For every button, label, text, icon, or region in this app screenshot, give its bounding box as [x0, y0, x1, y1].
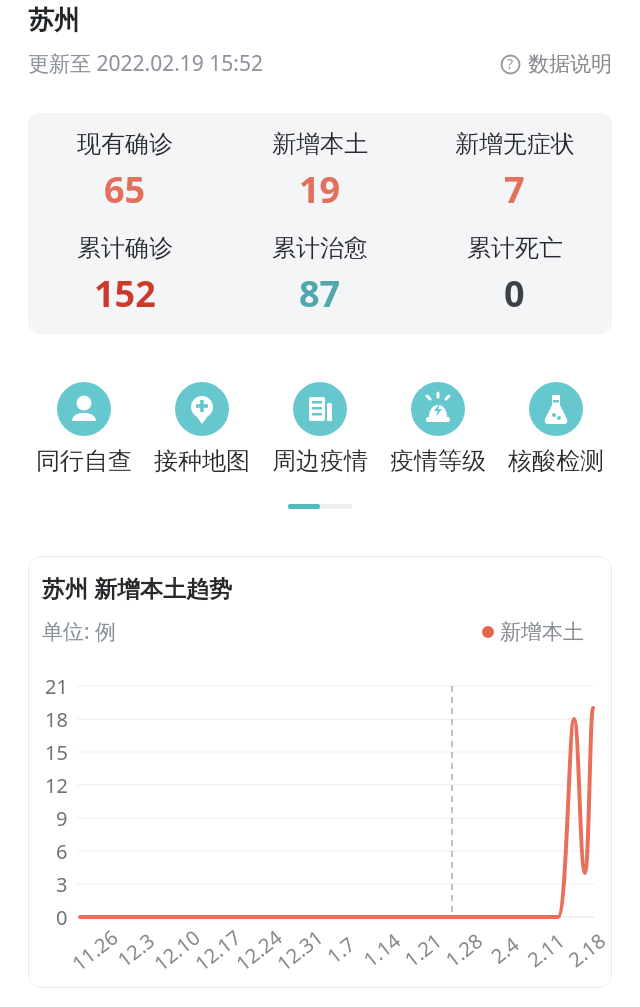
button[interactable]: 累计死亡: [417, 233, 612, 318]
staticText: 新增本土: [272, 129, 368, 159]
staticText: 87: [299, 269, 341, 318]
staticText: 0: [504, 269, 525, 318]
staticText: 现有确诊: [77, 129, 173, 159]
button[interactable]: 现有确诊: [28, 129, 222, 214]
staticText: 152: [94, 269, 156, 318]
staticText: 苏州: [28, 4, 80, 37]
staticText: ?: [507, 54, 514, 73]
button[interactable]: 核酸检测: [497, 382, 615, 476]
staticText: 新增本土: [500, 619, 584, 645]
staticText: 累计治愈: [272, 233, 368, 263]
staticText: 累计死亡: [467, 233, 563, 263]
staticText: 数据说明: [528, 51, 612, 77]
staticText: 更新至 2022.02.19 15:52: [28, 49, 263, 78]
staticText: 苏州 新增本土趋势: [42, 572, 232, 603]
staticText: 65: [104, 165, 146, 214]
staticText: 同行自查: [36, 446, 132, 476]
button[interactable]: ?: [500, 51, 612, 77]
button[interactable]: 新增本土: [222, 129, 417, 214]
button[interactable]: 接种地图: [143, 382, 261, 476]
staticText: 疫情等级: [390, 446, 486, 476]
staticText: 7: [504, 165, 525, 214]
staticText: 累计确诊: [77, 233, 173, 263]
staticText: 核酸检测: [508, 446, 604, 476]
button[interactable]: 累计治愈: [222, 233, 417, 318]
staticText: 单位: 例: [42, 617, 117, 646]
button[interactable]: 累计确诊: [28, 233, 222, 318]
staticText: 19: [299, 165, 341, 214]
button[interactable]: 同行自查: [25, 382, 143, 476]
button[interactable]: 新增无症状: [417, 129, 612, 214]
button[interactable]: 周边疫情: [261, 382, 379, 476]
staticText: 周边疫情: [272, 446, 368, 476]
button[interactable]: 疫情等级: [379, 382, 497, 476]
staticText: 接种地图: [154, 446, 250, 476]
staticText: 新增无症状: [455, 129, 575, 159]
